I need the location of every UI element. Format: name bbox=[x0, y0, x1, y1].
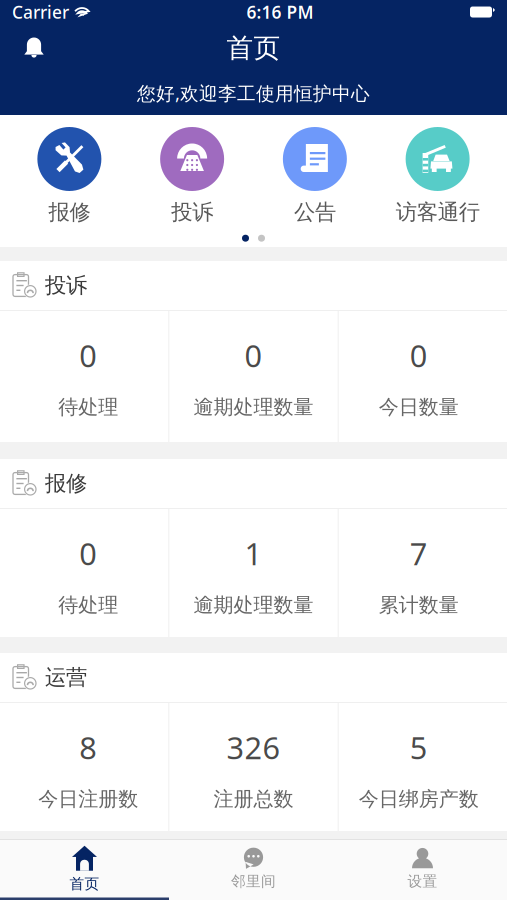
staticText: 累计数量 bbox=[379, 593, 459, 617]
staticText: 注册总数 bbox=[213, 787, 293, 811]
button[interactable]: 访客通行 bbox=[376, 127, 499, 225]
staticText: 公告 bbox=[294, 199, 336, 225]
staticText: 6:16 PM bbox=[246, 0, 313, 23]
staticText: 投诉 bbox=[171, 199, 213, 225]
staticText: 0 bbox=[79, 533, 97, 574]
staticText: 设置 bbox=[407, 872, 437, 890]
staticText: 报修 bbox=[48, 199, 90, 225]
staticText: 1 bbox=[244, 533, 262, 574]
staticText: 邻里间 bbox=[231, 872, 276, 890]
button[interactable]: 报修 bbox=[8, 127, 131, 225]
staticText: 0 bbox=[244, 335, 262, 376]
staticText: 今日绑房产数 bbox=[359, 787, 479, 811]
button[interactable]: 邻里间 bbox=[169, 840, 338, 900]
staticText: 待处理 bbox=[58, 593, 118, 617]
staticText: 报修 bbox=[45, 470, 87, 497]
staticText: 逾期处理数量 bbox=[193, 395, 313, 419]
staticText: 今日注册数 bbox=[38, 787, 138, 811]
staticText: 5 bbox=[410, 727, 428, 768]
staticText: 待处理 bbox=[58, 395, 118, 419]
button[interactable]: 投诉 bbox=[131, 127, 254, 225]
staticText: 首页 bbox=[69, 875, 99, 893]
staticText: 今日数量 bbox=[379, 395, 459, 419]
button[interactable]: 公告 bbox=[253, 127, 376, 225]
staticText: 0 bbox=[79, 335, 97, 376]
staticText: 投诉 bbox=[45, 272, 87, 299]
staticText: 8 bbox=[79, 727, 97, 768]
button[interactable]: 首页 bbox=[0, 840, 169, 900]
button[interactable]: Notifications bbox=[10, 26, 58, 70]
button[interactable]: 设置 bbox=[338, 840, 507, 900]
staticText: 326 bbox=[226, 727, 280, 768]
staticText: 0 bbox=[410, 335, 428, 376]
staticText: 首页 bbox=[226, 32, 280, 64]
staticText: 访客通行 bbox=[396, 199, 480, 225]
staticText: 逾期处理数量 bbox=[193, 593, 313, 617]
staticText: 您好,欢迎李工使用恒护中心 bbox=[137, 81, 370, 105]
staticText: Carrier bbox=[12, 0, 69, 23]
staticText: 7 bbox=[410, 533, 428, 574]
staticText: 运营 bbox=[45, 664, 87, 691]
